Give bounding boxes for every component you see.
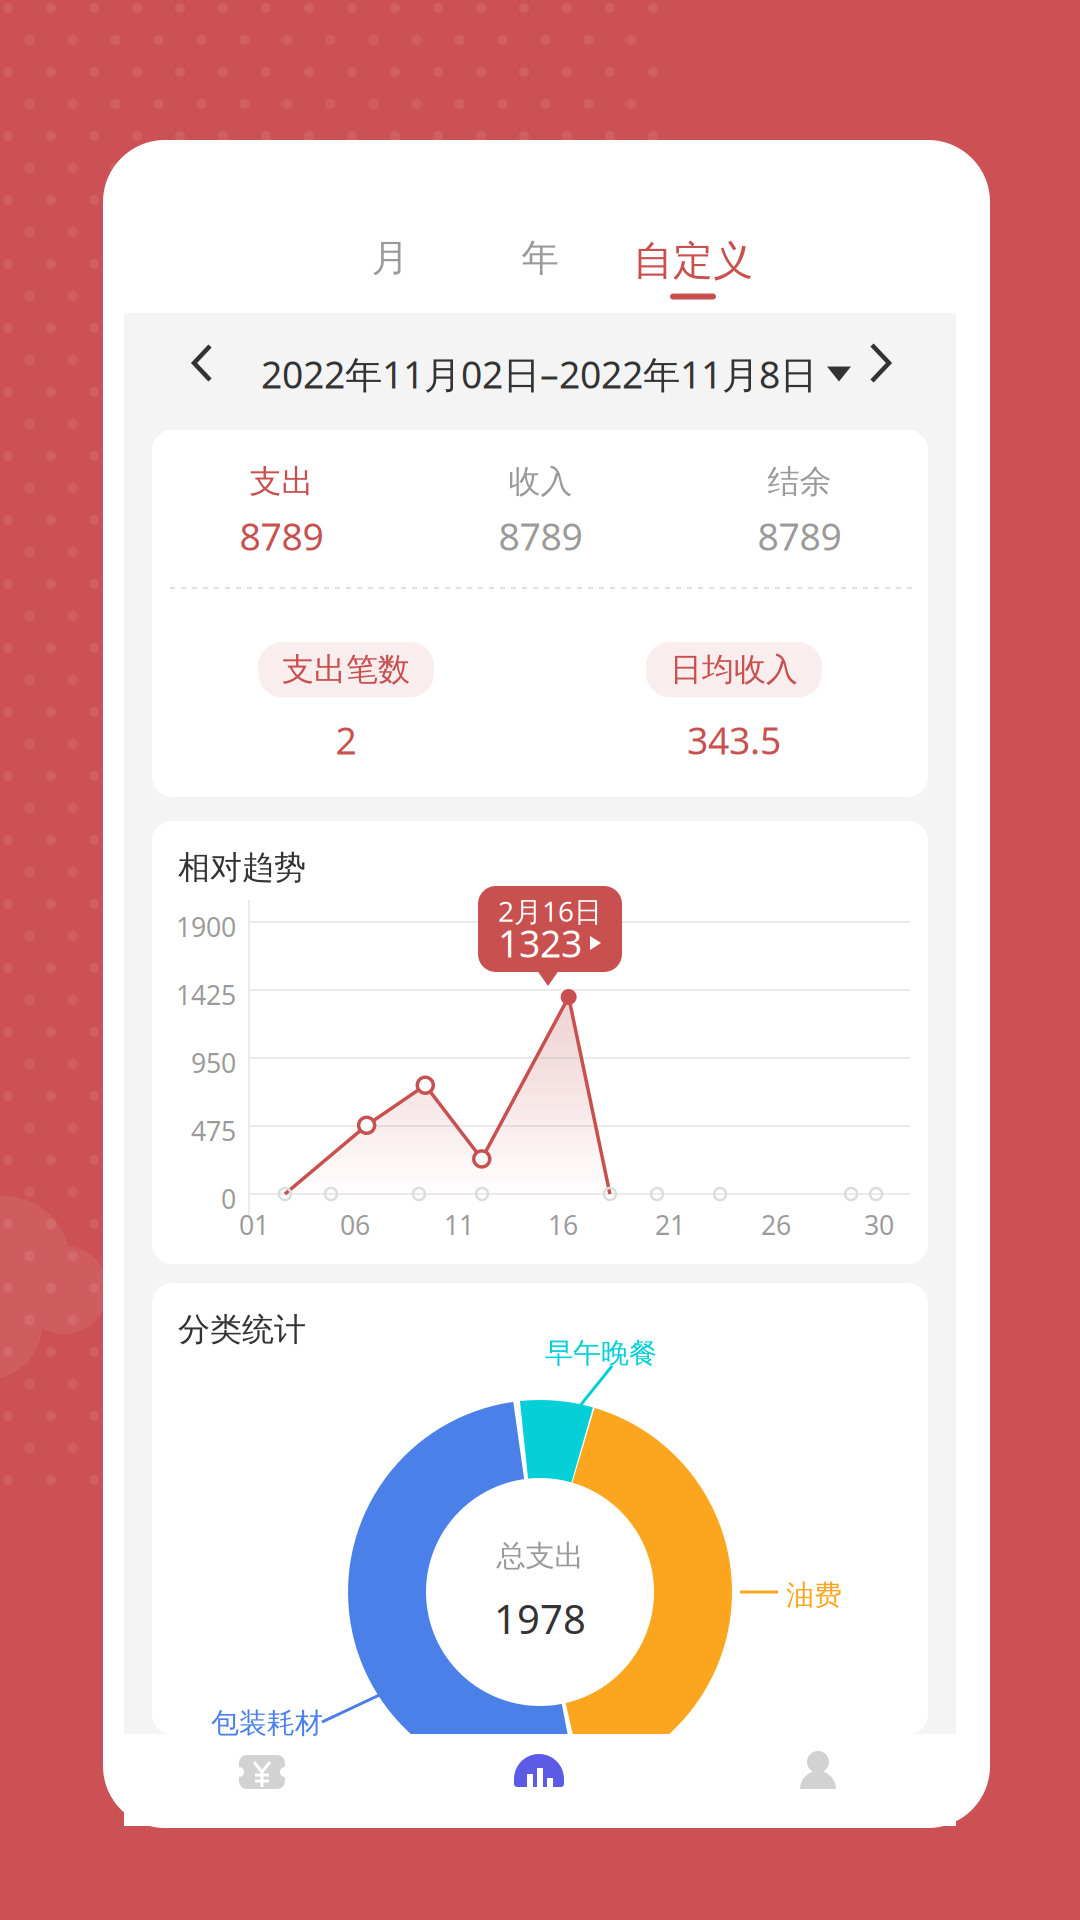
staticText: 总支出 [496, 1538, 583, 1574]
staticText: 相对趋势 [178, 848, 306, 887]
staticText: 2月16日 [498, 892, 602, 930]
staticText: 结余 [767, 462, 831, 501]
staticText: 8789 [239, 511, 323, 561]
staticText: 日均收入 [670, 650, 798, 689]
staticText: 早午晚餐 [545, 1336, 657, 1370]
staticText: 16 [548, 1207, 578, 1242]
staticText: 475 [191, 1113, 236, 1148]
staticText: 950 [191, 1045, 236, 1080]
staticText: 支出 [249, 462, 313, 501]
staticText: 30 [864, 1207, 894, 1242]
staticText: 月 [371, 235, 408, 281]
staticText: 包装耗材 [211, 1706, 323, 1740]
staticText: 1978 [494, 1592, 586, 1645]
button[interactable]: Next period [872, 345, 928, 401]
staticText: 06 [340, 1207, 370, 1242]
staticText: 支出笔数 [282, 650, 410, 689]
button[interactable]: 月 [335, 222, 445, 294]
button[interactable]: Previous period [194, 346, 250, 402]
staticText: 01 [239, 1207, 269, 1242]
staticText: 2022年11月02日–2022年11月8日 [261, 349, 817, 399]
staticText: 343.5 [687, 715, 781, 765]
staticText: 1425 [176, 977, 236, 1012]
staticText: 收入 [508, 462, 572, 501]
button[interactable]: 年 [485, 222, 595, 294]
staticText: 分类统计 [178, 1310, 306, 1349]
staticText: 8789 [498, 511, 582, 561]
staticText: 自定义 [633, 236, 753, 285]
staticText: 26 [761, 1207, 791, 1242]
button[interactable]: Bills [0, 0, 1080, 1920]
staticText: 年 [521, 235, 558, 281]
button[interactable]: 2022年11月02日–2022年11月8日 [261, 346, 851, 402]
staticText: 0 [221, 1181, 236, 1216]
staticText: 2 [335, 715, 356, 765]
staticText: 1323 [498, 918, 582, 968]
button[interactable]: Profile [0, 0, 1080, 1920]
button[interactable]: Statistics [0, 0, 1080, 1920]
staticText: 1900 [176, 909, 236, 944]
staticText: 21 [655, 1207, 685, 1242]
staticText: 8789 [757, 511, 841, 561]
staticText: 油费 [786, 1578, 842, 1612]
button[interactable]: 自定义 [603, 222, 783, 314]
staticText: 11 [444, 1207, 474, 1242]
